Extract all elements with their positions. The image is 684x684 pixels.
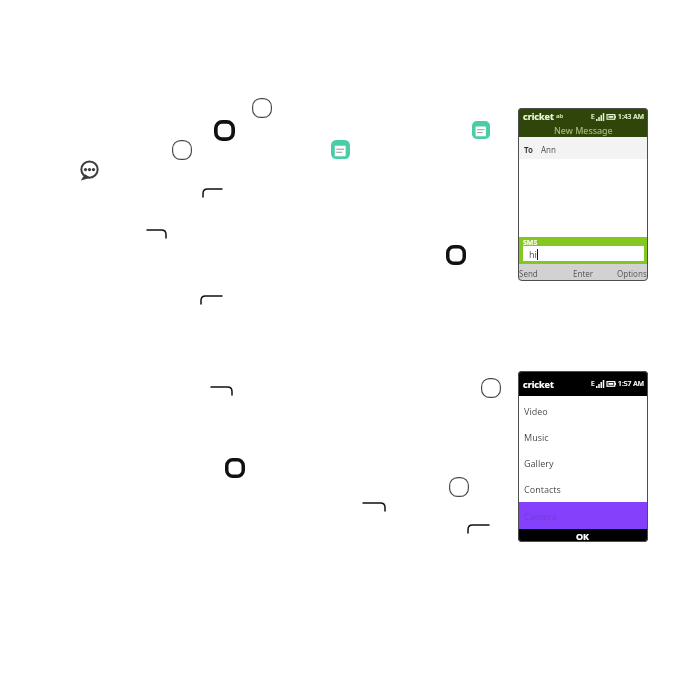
button[interactable]: OK bbox=[518, 529, 648, 542]
button[interactable]: Send bbox=[519, 268, 538, 279]
staticText: E bbox=[591, 112, 595, 121]
staticText: SMS bbox=[523, 238, 538, 248]
staticText: Camera bbox=[524, 510, 557, 522]
button[interactable]: Contacts bbox=[518, 476, 648, 502]
staticText: hi bbox=[529, 248, 537, 260]
button[interactable]: Options bbox=[617, 268, 647, 279]
staticText: cricket bbox=[523, 110, 554, 122]
staticText: Video bbox=[524, 405, 548, 417]
staticText: New Message bbox=[554, 124, 613, 136]
staticText: Gallery bbox=[524, 457, 554, 469]
staticText: Send bbox=[519, 268, 538, 279]
staticText: 1:57 AM bbox=[618, 379, 644, 388]
staticText: Music bbox=[524, 431, 549, 443]
button[interactable]: Gallery bbox=[518, 450, 648, 476]
staticText: E bbox=[591, 379, 595, 388]
other: Note bbox=[331, 140, 350, 159]
button[interactable]: Enter bbox=[573, 268, 594, 279]
staticText: 1:43 AM bbox=[618, 112, 644, 121]
staticText: Ann bbox=[541, 144, 556, 155]
staticText: Contacts bbox=[524, 483, 561, 495]
button[interactable]: Music bbox=[518, 424, 648, 450]
staticText: Options bbox=[617, 268, 647, 279]
other: Messages bbox=[80, 161, 99, 180]
staticText: ab bbox=[556, 112, 564, 120]
staticText: To bbox=[524, 144, 534, 155]
button[interactable]: Video bbox=[518, 398, 648, 424]
other: Note bbox=[472, 121, 490, 139]
staticText: Enter bbox=[573, 268, 594, 279]
staticText: OK bbox=[576, 530, 590, 542]
button[interactable]: Camera bbox=[518, 502, 648, 529]
staticText: cricket bbox=[523, 378, 554, 390]
